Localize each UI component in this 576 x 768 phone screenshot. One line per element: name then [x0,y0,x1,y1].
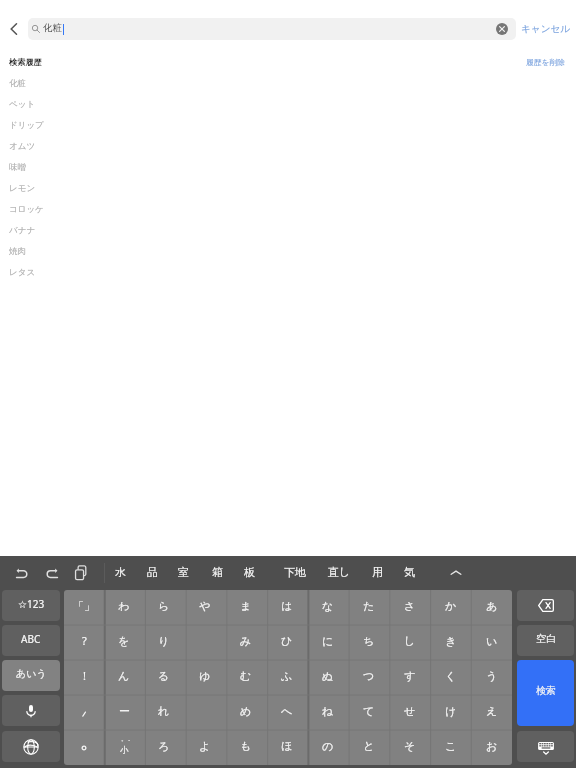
button[interactable]: き [430,625,471,660]
button[interactable]: も [225,730,266,765]
button[interactable]: 「」 [64,590,104,625]
button[interactable]: Change keyboard [2,731,60,762]
button[interactable]: こ [430,730,471,765]
button[interactable]: み [225,625,266,660]
button[interactable]: や [184,590,225,625]
button[interactable]: キャンセル [519,18,573,40]
button[interactable]: Undo [10,556,34,589]
button[interactable]: え [471,695,512,730]
button[interactable]: ー [104,695,144,730]
button[interactable]: ? [64,625,104,660]
staticText: め [240,704,252,718]
button[interactable]: に [307,625,348,660]
button[interactable]: Back [3,18,25,40]
button[interactable]: た [348,590,389,625]
button[interactable]: ひ [266,625,307,660]
button[interactable]: 箱 [202,556,232,589]
button[interactable]: と [348,730,389,765]
button[interactable]: し [389,625,430,660]
button[interactable]: 室 [168,556,198,589]
button[interactable]: い [471,625,512,660]
button[interactable]: コロッケ [0,199,576,220]
button[interactable]: な [307,590,348,625]
button[interactable]: Show more candidates [444,556,468,589]
button[interactable]: ら [144,590,184,625]
button[interactable]: ☆123 [2,590,60,621]
button[interactable]: レモン [0,178,576,199]
button[interactable]: る [144,660,184,695]
button[interactable]: 下地 [273,556,317,589]
button[interactable]: Backspace [517,590,574,621]
button[interactable]: 用 [362,556,392,589]
button[interactable]: け [430,695,471,730]
button[interactable]: ゛゜ [104,730,144,765]
button[interactable]: ゆ [184,660,225,695]
button[interactable]: す [389,660,430,695]
button[interactable]: 気 [394,556,424,589]
button[interactable]: Voice input [2,695,60,726]
button[interactable]: ね [307,695,348,730]
button[interactable]: ほ [266,730,307,765]
button[interactable]: さ [389,590,430,625]
staticText: ね [322,704,334,718]
button[interactable]: オムツ [0,136,576,157]
button[interactable]: お [471,730,512,765]
button[interactable]: 検索 [517,660,574,726]
button[interactable]: 化粧 [0,73,576,94]
button[interactable]: 品 [137,556,167,589]
button[interactable]: そ [389,730,430,765]
button[interactable]: つ [348,660,389,695]
staticText: ? [82,633,87,648]
button[interactable]: へ [266,695,307,730]
button[interactable]: は [266,590,307,625]
staticText: う [486,669,498,683]
button[interactable]: 直し [317,556,361,589]
button[interactable]: 空白 [517,625,574,656]
button[interactable]: 水 [105,556,135,589]
button[interactable]: 味噌 [0,157,576,178]
button[interactable]: う [471,660,512,695]
button[interactable]: ち [348,625,389,660]
staticText: 化粧 [9,78,26,89]
button[interactable]: Clear text [495,22,509,36]
button[interactable]: か [430,590,471,625]
button[interactable]: む [225,660,266,695]
button[interactable]: わ [104,590,144,625]
button[interactable] [64,695,104,730]
staticText: ぬ [322,669,334,683]
button[interactable]: あ [471,590,512,625]
button[interactable]: て [348,695,389,730]
button[interactable]: り [144,625,184,660]
button[interactable]: を [104,625,144,660]
button[interactable]: ん [104,660,144,695]
button[interactable]: め [225,695,266,730]
staticText: ドリップ [9,120,44,131]
button[interactable]: レタス [0,262,576,283]
button[interactable] [64,730,104,765]
button[interactable]: ろ [144,730,184,765]
button[interactable]: ! [64,660,104,695]
button[interactable]: Redo [40,556,64,589]
button[interactable]: 履歴を削除 [526,57,566,67]
button[interactable]: あいう [2,660,60,691]
button[interactable]: よ [184,730,225,765]
button[interactable]: ふ [266,660,307,695]
button[interactable]: 焼肉 [0,241,576,262]
button[interactable]: 板 [234,556,264,589]
button[interactable]: れ [144,695,184,730]
button[interactable]: ま [225,590,266,625]
staticText: 「」 [73,599,95,613]
button[interactable]: く [430,660,471,695]
button[interactable]: ドリップ [0,115,576,136]
button[interactable]: Paste [69,556,93,589]
button[interactable]: せ [389,695,430,730]
button[interactable]: 化粧 [28,18,516,40]
button[interactable]: バナナ [0,220,576,241]
button[interactable]: の [307,730,348,765]
button[interactable]: ABC [2,625,60,656]
button[interactable]: Hide keyboard [517,731,574,762]
button[interactable]: ぬ [307,660,348,695]
